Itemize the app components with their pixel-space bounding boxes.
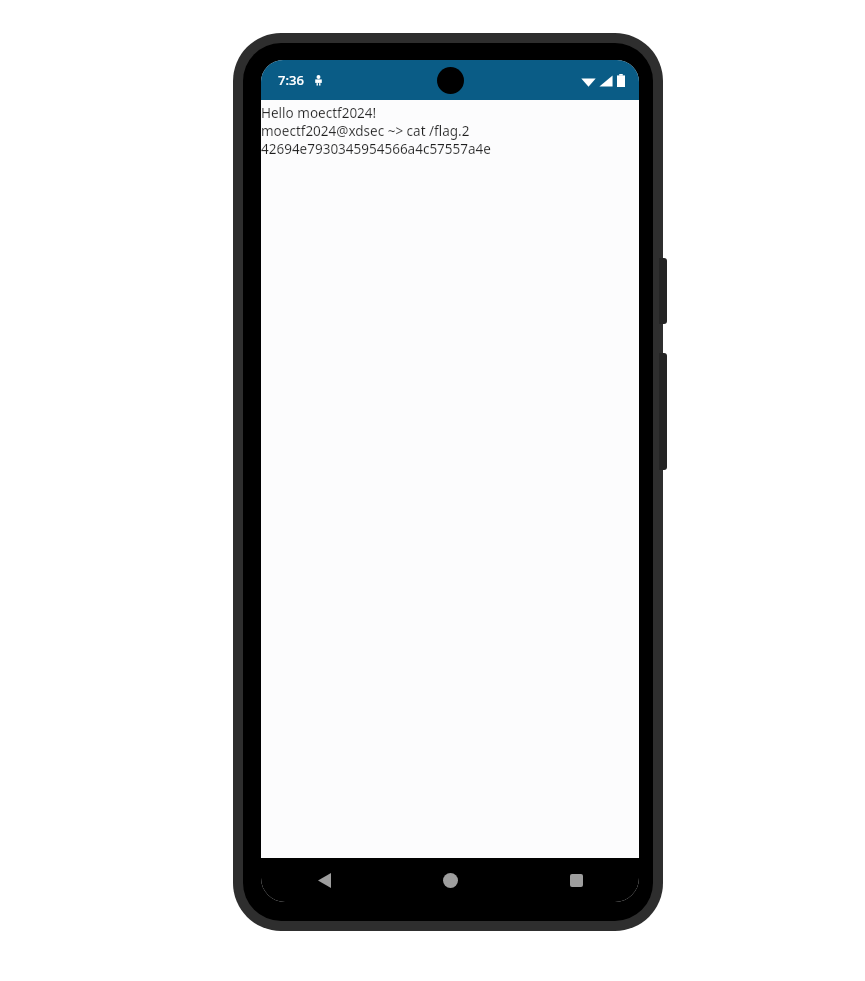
- staticText: 7:36: [278, 71, 304, 89]
- button[interactable]: Back: [261, 858, 387, 902]
- staticText: 42694e7930345954566a4c57557a4e: [261, 140, 639, 158]
- button[interactable]: Home: [387, 858, 513, 902]
- other: Power: [659, 258, 667, 324]
- staticText: moectf2024@xdsec ~> cat /flag.2: [261, 122, 639, 140]
- other: Volume: [659, 353, 667, 470]
- button[interactable]: Recent apps: [513, 858, 639, 902]
- staticText: Hello moectf2024!: [261, 104, 639, 122]
